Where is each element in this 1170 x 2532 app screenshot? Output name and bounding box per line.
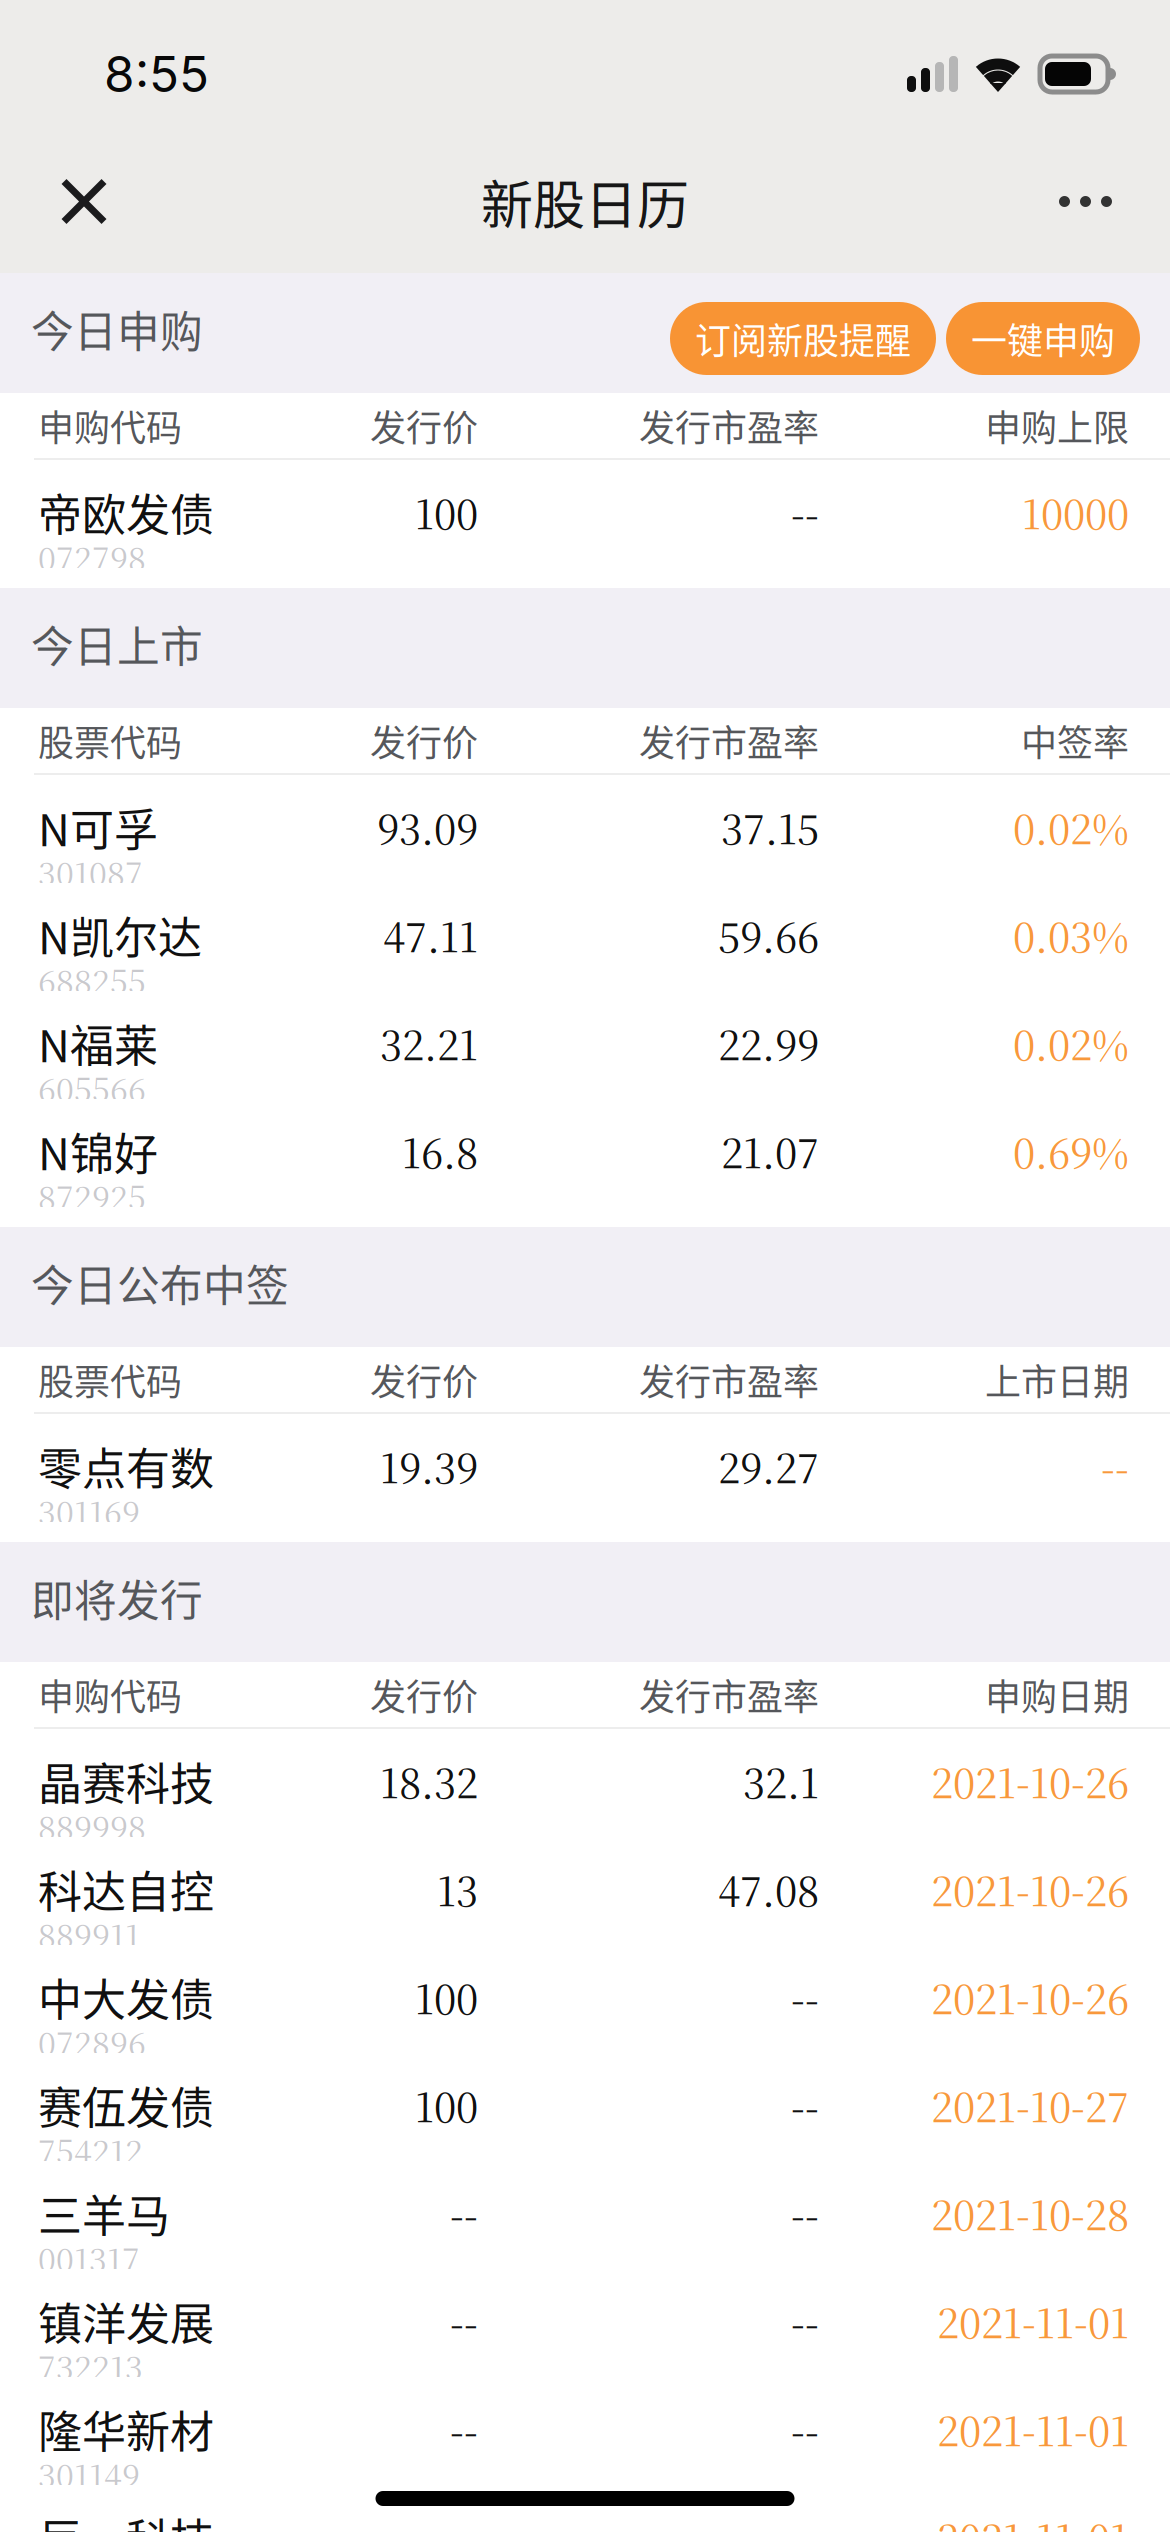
staticText: 镇洋发展	[38, 2289, 214, 2353]
staticText: 帝欧发债	[38, 480, 214, 544]
button[interactable]: 隆华新材	[0, 2377, 1170, 2485]
button[interactable]: 巨一科技	[0, 2485, 1170, 2532]
staticText: 100	[415, 1968, 478, 2026]
staticText: --	[791, 2184, 819, 2242]
staticText: 申购上限	[985, 399, 1129, 451]
button[interactable]: 零点有数	[0, 1414, 1170, 1522]
button[interactable]: Close	[0, 130, 153, 273]
staticText: 2021-10-26	[931, 1752, 1129, 1810]
staticText: --	[791, 1968, 819, 2026]
staticText: 872925	[38, 1173, 146, 1219]
staticText: 688255	[38, 957, 146, 1003]
staticText: 0.02%	[1013, 1014, 1129, 1072]
button[interactable]: 镇洋发展	[0, 2269, 1170, 2377]
button[interactable]: More options	[1013, 130, 1170, 273]
staticText: 零点有数	[38, 1434, 214, 1498]
staticText: --	[791, 2292, 819, 2350]
staticText: 29.27	[718, 1437, 819, 1495]
staticText: N锦好	[38, 1119, 158, 1183]
staticText: N福莱	[38, 1011, 158, 1075]
staticText: 19.39	[380, 1437, 478, 1495]
staticText: 0.02%	[1013, 798, 1129, 856]
staticText: 三羊马	[38, 2181, 170, 2245]
staticText: 发行价	[370, 399, 478, 451]
staticText: N凯尔达	[38, 903, 202, 967]
staticText: 072798	[38, 534, 146, 580]
staticText: 100	[415, 483, 478, 541]
staticText: 59.66	[718, 906, 819, 964]
button[interactable]: 中大发债	[0, 1945, 1170, 2053]
staticText: N可孚	[38, 795, 158, 859]
staticText: 发行市盈率	[639, 399, 819, 451]
button[interactable]: 赛伍发债	[0, 2053, 1170, 2161]
staticText: 今日公布中签	[31, 1252, 289, 1314]
staticText: 2021-10-26	[931, 1968, 1129, 2026]
staticText: 93.09	[377, 798, 478, 856]
button[interactable]: 一键申购	[946, 291, 1140, 375]
staticText: 发行价	[370, 1668, 478, 1720]
staticText: 巨一科技	[38, 2505, 214, 2532]
staticText: 发行价	[370, 714, 478, 766]
staticText: --	[1101, 1437, 1129, 1495]
staticText: --	[791, 483, 819, 541]
staticText: 605566	[38, 1065, 146, 1111]
staticText: 37.15	[721, 798, 819, 856]
button[interactable]: N锦好	[0, 1099, 1170, 1207]
staticText: 072896	[38, 2019, 146, 2065]
staticText: 8:55	[104, 44, 209, 104]
staticText: 301169	[38, 1488, 140, 1534]
staticText: 32.21	[380, 1014, 478, 1072]
staticText: 10000	[1022, 483, 1129, 541]
staticText: --	[450, 2292, 478, 2350]
staticText: 新股日历	[481, 164, 689, 239]
staticText: 301149	[38, 2451, 140, 2497]
staticText: 2021-10-26	[931, 1860, 1129, 1918]
staticText: 科达自控	[38, 1857, 214, 1921]
button[interactable]: 三羊马	[0, 2161, 1170, 2269]
staticText: 发行市盈率	[639, 1668, 819, 1720]
staticText: 2021-11-01	[937, 2400, 1129, 2458]
staticText: 001317	[38, 2235, 140, 2281]
button[interactable]: 科达自控	[0, 1837, 1170, 1945]
button[interactable]: 晶赛科技	[0, 1729, 1170, 1837]
staticText: 21.07	[721, 1122, 819, 1180]
staticText: 22.99	[718, 1014, 819, 1072]
staticText: 754212	[38, 2127, 143, 2173]
button[interactable]: 帝欧发债	[0, 460, 1170, 568]
staticText: 13	[437, 1860, 478, 1918]
staticText: 889998	[38, 1803, 146, 1849]
staticText: 16.8	[402, 1122, 478, 1180]
staticText: 一键申购	[971, 312, 1115, 364]
staticText: 中签率	[1021, 714, 1129, 766]
button[interactable]: N福莱	[0, 991, 1170, 1099]
staticText: --	[450, 2184, 478, 2242]
staticText: 889911	[38, 1911, 140, 1957]
button[interactable]: N可孚	[0, 775, 1170, 883]
staticText: 今日申购	[31, 298, 203, 360]
staticText: --	[791, 2400, 819, 2458]
staticText: 即将发行	[31, 1567, 203, 1629]
staticText: 0.69%	[1013, 1122, 1129, 1180]
button[interactable]: N凯尔达	[0, 883, 1170, 991]
staticText: 申购日期	[985, 1668, 1129, 1720]
staticText: 32.1	[743, 1752, 819, 1810]
staticText: 301087	[38, 849, 143, 895]
staticText: 2021-10-28	[931, 2184, 1129, 2242]
staticText: 晶赛科技	[38, 1749, 214, 1813]
staticText: 申购代码	[38, 1668, 182, 1720]
staticText: --	[791, 2076, 819, 2134]
staticText: 股票代码	[38, 1353, 182, 1405]
staticText: 隆华新材	[38, 2397, 214, 2461]
staticText: 47.08	[718, 1860, 819, 1918]
button[interactable]: 订阅新股提醒	[670, 291, 936, 375]
staticText: 今日上市	[31, 613, 203, 675]
staticText: 发行市盈率	[639, 714, 819, 766]
staticText: 732213	[38, 2343, 143, 2389]
staticText: 发行市盈率	[639, 1353, 819, 1405]
staticText: 0.03%	[1013, 906, 1129, 964]
staticText: --	[450, 2400, 478, 2458]
staticText: 股票代码	[38, 714, 182, 766]
staticText: 申购代码	[38, 399, 182, 451]
